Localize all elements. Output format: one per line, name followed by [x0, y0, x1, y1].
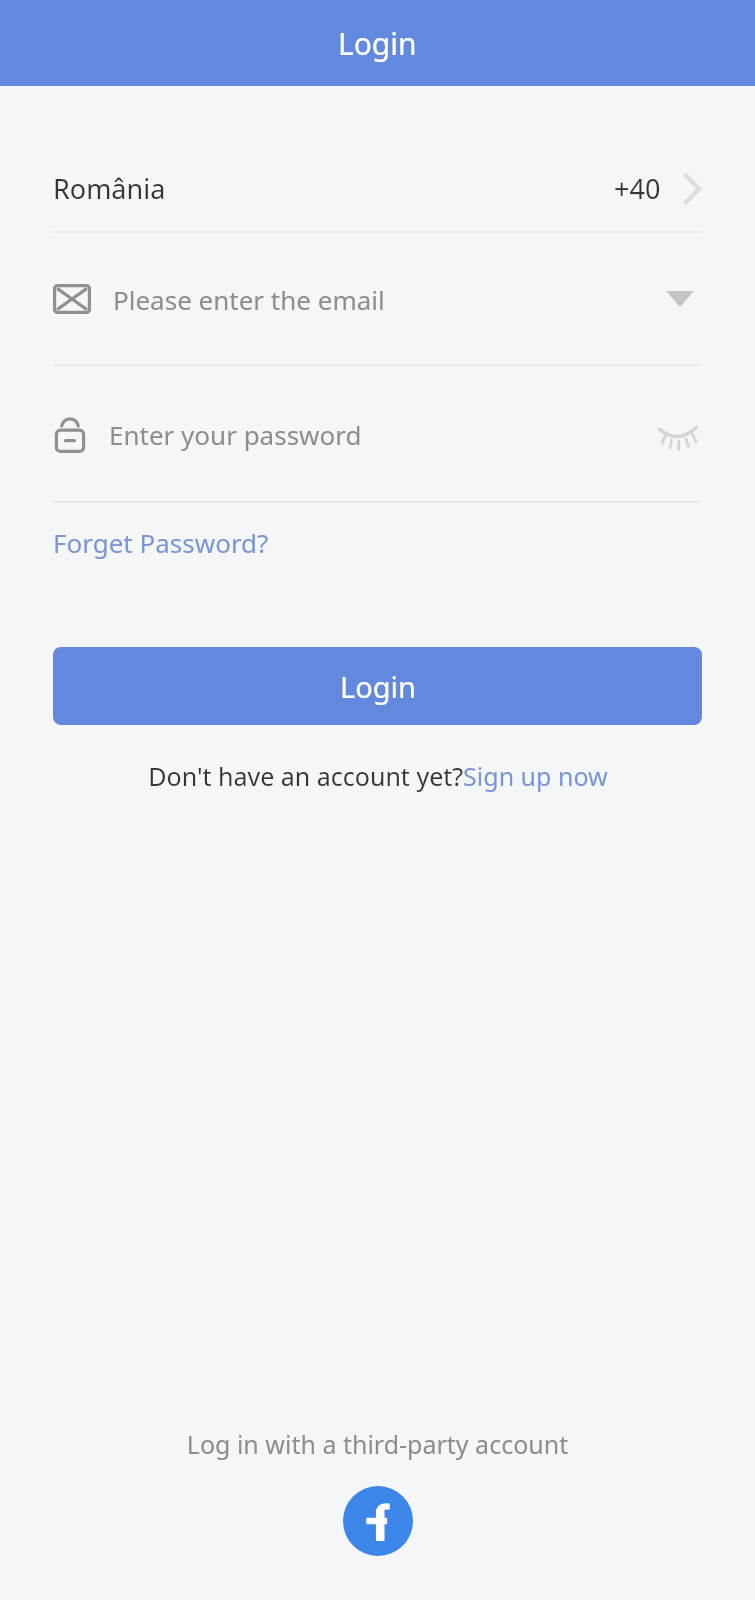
button[interactable]: Forget Password?: [53, 503, 277, 570]
staticText: Log in with a third-party account: [0, 1427, 755, 1461]
staticText: Forget Password?: [53, 525, 269, 560]
staticText: Please enter the email: [113, 282, 385, 317]
staticText: +40: [614, 170, 661, 207]
button[interactable]: Don't have an account yet?Sign up now: [140, 751, 616, 801]
button[interactable]: Log in with Facebook: [343, 1486, 413, 1556]
staticText: România: [53, 170, 166, 207]
button[interactable]: Show saved emails: [658, 277, 702, 321]
button[interactable]: Show password: [654, 410, 702, 458]
staticText: Enter your password: [109, 417, 362, 452]
staticText: Login: [340, 667, 416, 706]
button[interactable]: Login: [53, 647, 702, 725]
staticText: Don't have an account yet?Sign up now: [148, 759, 608, 793]
button[interactable]: Please enter the email: [0, 233, 755, 364]
staticText: Login: [338, 23, 417, 64]
button[interactable]: Enter your password: [0, 366, 755, 501]
button[interactable]: România: [0, 145, 755, 231]
